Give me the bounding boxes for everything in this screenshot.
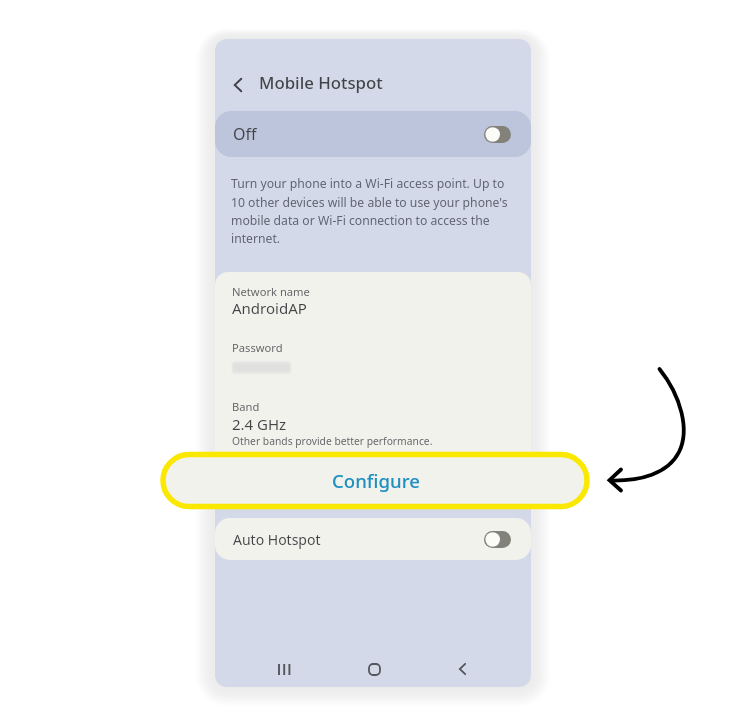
staticText: Network name (232, 284, 310, 299)
staticText: Auto Hotspot (233, 530, 321, 549)
button[interactable]: Back (440, 647, 484, 687)
button[interactable]: Configure (166, 456, 584, 505)
staticText: Password (232, 340, 283, 355)
button[interactable]: Home (352, 647, 396, 687)
button[interactable]: Auto Hotspot (215, 518, 531, 560)
button[interactable]: Back (224, 71, 252, 99)
staticText: Off (233, 123, 257, 145)
staticText: Configure (332, 468, 420, 493)
staticText: Mobile Hotspot (259, 71, 383, 94)
button[interactable]: Recent apps (262, 647, 306, 687)
staticText: Band (232, 399, 260, 414)
staticText: Turn your phone into a Wi-Fi access poin… (231, 175, 511, 246)
staticText: Other bands provide better performance. (232, 434, 433, 448)
staticText: AndroidAP (232, 298, 307, 318)
staticText: 2.4 GHz (232, 414, 287, 434)
button[interactable]: Off (215, 111, 531, 157)
